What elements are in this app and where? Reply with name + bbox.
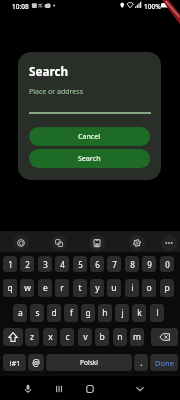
button[interactable]: 0 xyxy=(160,256,174,272)
button[interactable]: n xyxy=(113,328,127,346)
button[interactable]: e xyxy=(38,279,52,297)
button[interactable]: s xyxy=(30,304,44,322)
button[interactable]: y xyxy=(90,279,104,297)
staticText: 4 xyxy=(60,259,65,270)
button[interactable]: q xyxy=(3,279,17,297)
staticText: r xyxy=(60,282,64,294)
staticText: Place or address xyxy=(29,87,83,97)
button[interactable]: h xyxy=(98,304,112,322)
button[interactable]: b xyxy=(95,328,109,346)
button[interactable]: 8 xyxy=(125,256,139,272)
staticText: @ xyxy=(32,357,40,369)
button[interactable]: Cancel xyxy=(29,127,150,146)
staticText: Cancel xyxy=(78,132,101,142)
button[interactable]: u xyxy=(107,279,121,297)
staticText: Done xyxy=(155,358,174,368)
staticText: i xyxy=(131,282,134,294)
button[interactable]: 1 xyxy=(3,256,17,272)
staticText: c xyxy=(65,331,70,343)
staticText: 8 xyxy=(130,259,135,270)
button[interactable]: Recent apps xyxy=(49,376,69,400)
staticText: t xyxy=(78,282,82,294)
button[interactable]: 5 xyxy=(73,256,87,272)
button[interactable]: Stickers xyxy=(49,231,69,252)
button[interactable]: 3 xyxy=(38,256,52,272)
button[interactable]: r xyxy=(55,279,69,297)
staticText: d xyxy=(51,307,57,319)
staticText: n xyxy=(117,331,123,343)
button[interactable]: x xyxy=(43,328,57,346)
staticText: 6 xyxy=(95,259,100,270)
staticText: 9 xyxy=(147,259,152,270)
staticText: h xyxy=(102,307,108,319)
button[interactable]: Backspace xyxy=(151,328,178,346)
staticText: s xyxy=(35,307,40,319)
button[interactable]: t xyxy=(73,279,87,297)
button[interactable]: v xyxy=(78,328,92,346)
button[interactable]: 2 xyxy=(20,256,34,272)
button[interactable]: w xyxy=(20,279,34,297)
staticText: y xyxy=(95,282,100,294)
button[interactable]: 9 xyxy=(142,256,156,272)
button[interactable]: Clipboard xyxy=(87,231,107,252)
staticText: m xyxy=(133,331,141,343)
button[interactable]: Polski xyxy=(46,354,132,371)
staticText: Search xyxy=(78,154,101,164)
button[interactable]: o xyxy=(142,279,156,297)
staticText: b xyxy=(99,331,105,343)
button[interactable]: Search xyxy=(29,149,150,168)
button[interactable]: Settings xyxy=(127,231,147,252)
button[interactable]: c xyxy=(60,328,74,346)
staticText: v xyxy=(83,331,88,343)
staticText: 100% xyxy=(144,2,161,11)
button[interactable]: . xyxy=(134,354,148,371)
button[interactable]: l xyxy=(150,304,164,322)
staticText: u xyxy=(111,282,117,294)
staticText: z xyxy=(30,331,34,343)
button[interactable]: Emoji xyxy=(11,231,31,252)
button[interactable]: Shift xyxy=(3,328,23,346)
staticText: q xyxy=(7,282,13,294)
staticText: j xyxy=(121,307,124,319)
button[interactable]: z xyxy=(25,328,39,346)
button[interactable]: i xyxy=(125,279,139,297)
staticText: w xyxy=(24,282,31,294)
staticText: f xyxy=(70,307,73,319)
button[interactable]: m xyxy=(130,328,144,346)
button[interactable]: Home xyxy=(80,376,100,400)
staticText: !#1 xyxy=(9,358,21,368)
button[interactable]: d xyxy=(47,304,61,322)
staticText: 7 xyxy=(112,259,117,270)
staticText: 10:08 xyxy=(12,2,29,11)
staticText: x xyxy=(48,331,53,343)
staticText: p xyxy=(164,282,170,294)
button[interactable]: More options xyxy=(159,231,179,252)
button[interactable]: @ xyxy=(28,354,44,371)
staticText: o xyxy=(146,282,152,294)
staticText: e xyxy=(43,282,48,294)
button[interactable]: f xyxy=(64,304,78,322)
button[interactable]: Done xyxy=(150,354,178,371)
staticText: 5 xyxy=(78,259,83,270)
button[interactable]: 4 xyxy=(55,256,69,272)
button[interactable]: 7 xyxy=(107,256,121,272)
staticText: l xyxy=(156,307,159,319)
staticText: 2 xyxy=(25,259,30,270)
button[interactable]: j xyxy=(115,304,129,322)
staticText: k xyxy=(137,307,142,319)
staticText: . xyxy=(140,357,143,369)
button[interactable]: a xyxy=(13,304,27,322)
staticText: Polski xyxy=(80,358,98,367)
button[interactable]: p xyxy=(160,279,174,297)
button[interactable]: !#1 xyxy=(3,354,26,371)
button[interactable]: 6 xyxy=(90,256,104,272)
staticText: a xyxy=(18,307,23,319)
button[interactable]: Voice input xyxy=(18,376,38,400)
button[interactable]: k xyxy=(132,304,146,322)
staticText: Search xyxy=(29,63,69,79)
button[interactable]: Back xyxy=(130,376,150,400)
button[interactable]: g xyxy=(81,304,95,322)
staticText: 1 xyxy=(8,259,13,270)
staticText: g xyxy=(85,307,91,319)
staticText: 0 xyxy=(165,259,170,270)
